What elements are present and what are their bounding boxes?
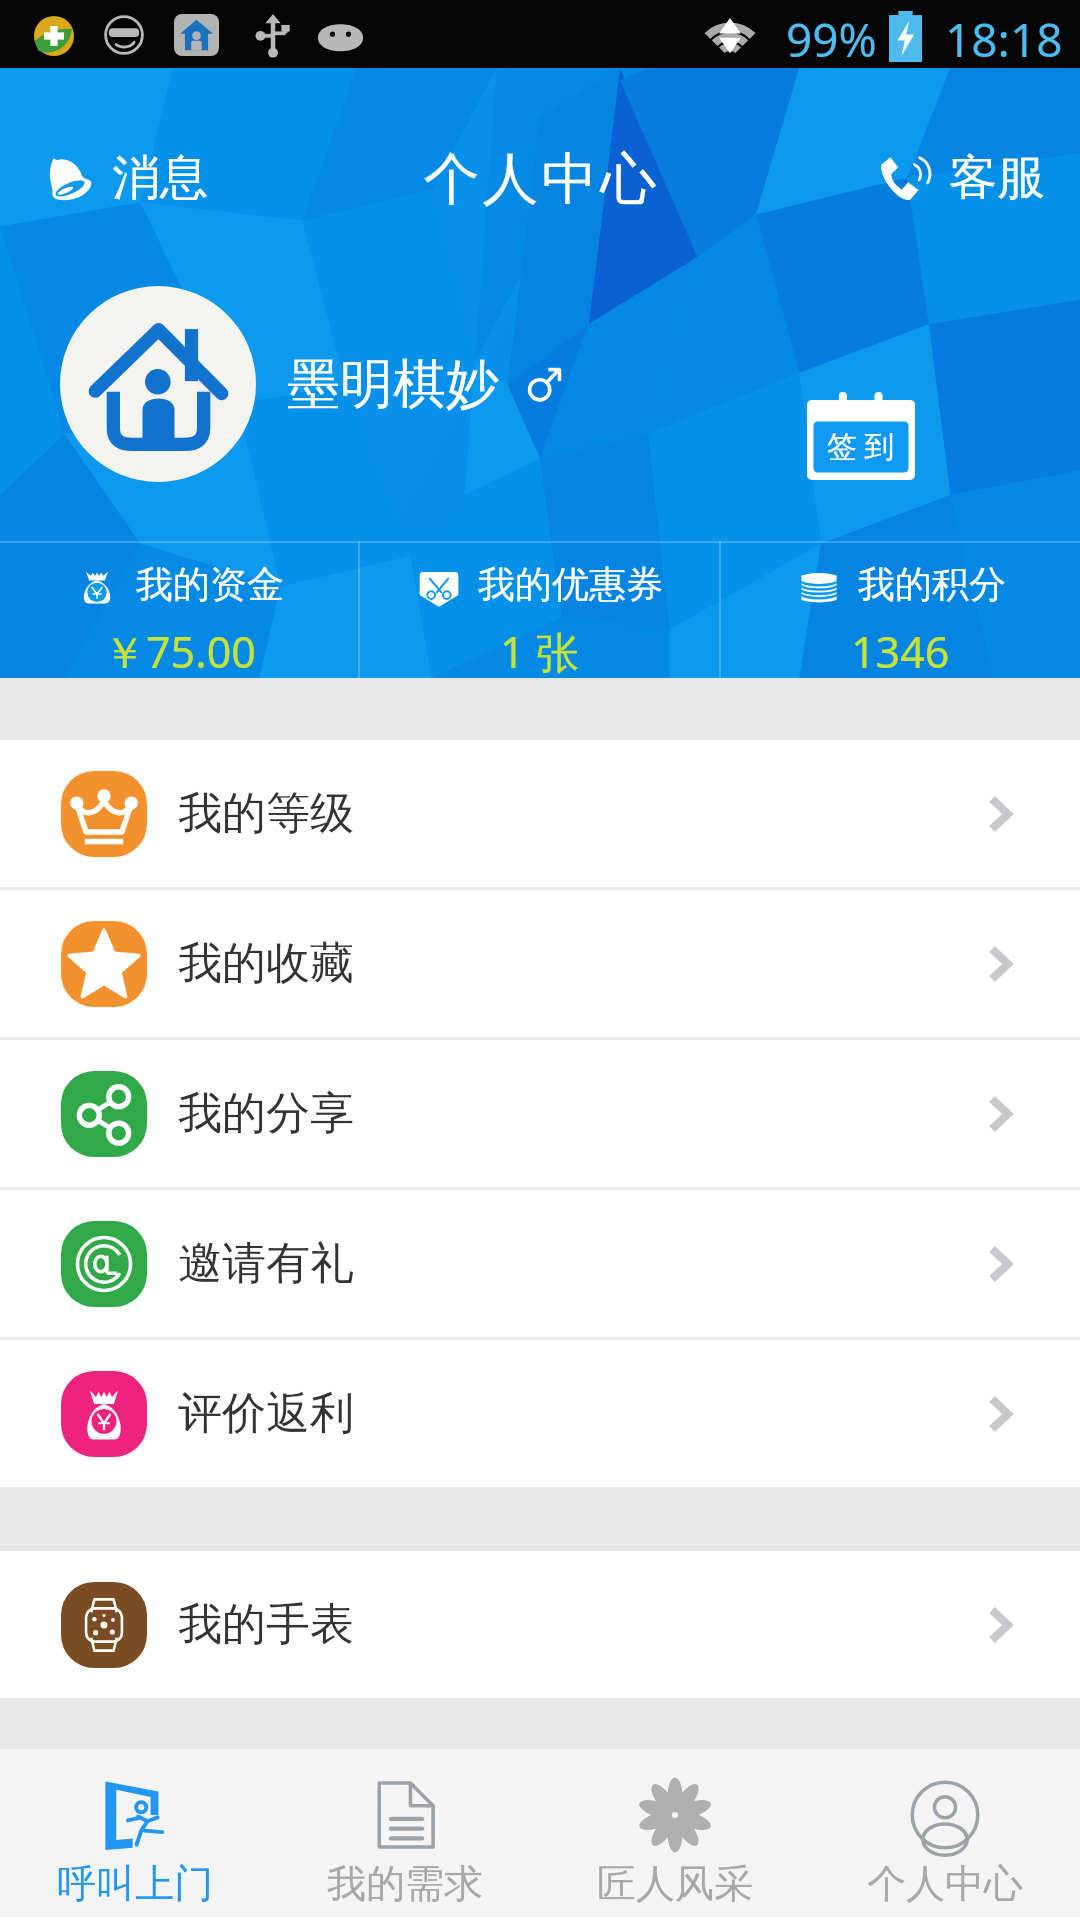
button[interactable]: 我的需求 <box>270 1759 540 1908</box>
button[interactable]: 我的积分 <box>721 541 1080 678</box>
button[interactable]: 我的手表 <box>0 1551 1080 1698</box>
button[interactable]: 我的资金 <box>0 541 358 678</box>
button[interactable]: 我的分享 <box>0 1040 1080 1187</box>
button[interactable]: 个人中心 <box>810 1759 1080 1908</box>
staticText: 呼叫上门 <box>57 1859 213 1908</box>
staticText: 客服 <box>949 148 1045 208</box>
staticText: 签 到 <box>827 425 895 466</box>
staticText: 1 张 <box>500 622 579 678</box>
staticText: 评价返利 <box>178 1386 354 1441</box>
staticText: 个人中心 <box>867 1859 1023 1908</box>
staticText: 1346 <box>851 622 950 678</box>
staticText: 我的收藏 <box>178 936 354 991</box>
staticText: 我的等级 <box>178 786 354 841</box>
staticText: 我的分享 <box>178 1086 354 1141</box>
staticText: 我的需求 <box>327 1859 483 1908</box>
button[interactable]: 邀请有礼 <box>0 1190 1080 1337</box>
button[interactable]: 我的收藏 <box>0 890 1080 1037</box>
staticText: 消息 <box>112 148 208 208</box>
staticText: 邀请有礼 <box>178 1236 354 1291</box>
button[interactable]: 消息 <box>34 138 220 218</box>
button[interactable]: 我的优惠券 <box>360 541 719 678</box>
button[interactable]: 评价返利 <box>0 1340 1080 1487</box>
staticText: 墨明棋妙 <box>287 351 499 418</box>
staticText: 我的积分 <box>858 561 1006 608</box>
button[interactable]: 我的等级 <box>0 740 1080 887</box>
staticText: 我的手表 <box>178 1597 354 1652</box>
button[interactable]: 客服 <box>867 138 1053 218</box>
staticText: ￥75.00 <box>103 622 256 678</box>
staticText: 匠人风采 <box>597 1859 753 1908</box>
staticText: 我的资金 <box>136 561 284 608</box>
button[interactable]: 匠人风采 <box>540 1759 810 1908</box>
button[interactable]: 签到 <box>807 392 915 480</box>
staticText: 18:18 <box>945 8 1063 71</box>
staticText: 个人中心 <box>422 144 658 215</box>
staticText: 我的优惠券 <box>478 561 663 608</box>
staticText: 99% <box>786 8 877 71</box>
button[interactable]: 呼叫上门 <box>0 1759 270 1908</box>
